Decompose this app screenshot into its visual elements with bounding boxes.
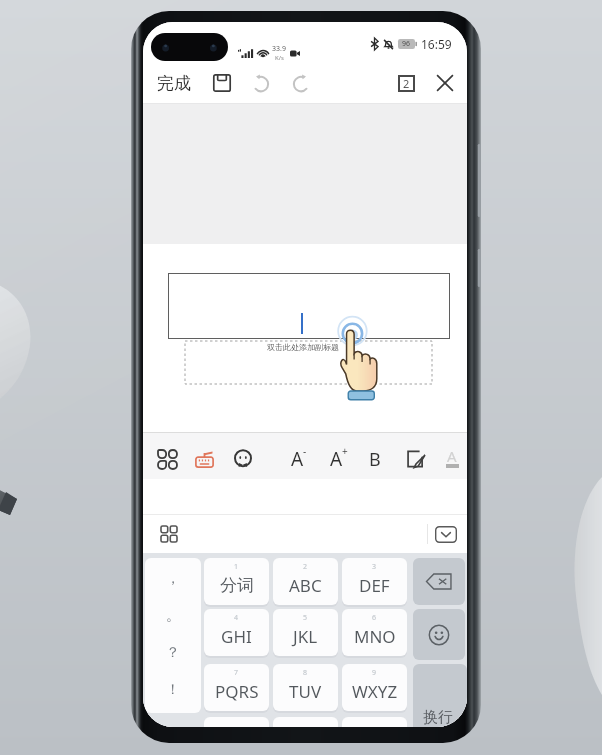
staticText: B [369, 447, 381, 472]
staticText: A [447, 446, 457, 466]
staticText: 9 [372, 668, 377, 678]
button[interactable]: Text colour [438, 445, 466, 473]
staticText: 双击此处添加副标题 [267, 342, 339, 352]
staticText: 4 [234, 613, 239, 623]
button[interactable]: Input methods [153, 518, 185, 550]
button[interactable]: 5 [273, 609, 338, 656]
staticText: - [303, 444, 307, 458]
button[interactable]: Note [400, 443, 432, 475]
staticText: 分词 [220, 575, 254, 596]
button[interactable]: Title placeholder [168, 273, 450, 339]
staticText: PQRS [215, 680, 259, 703]
staticText: ABC [289, 574, 322, 597]
button[interactable]: Backspace [413, 558, 465, 605]
button[interactable]: Save [207, 68, 237, 98]
button[interactable] [342, 717, 407, 727]
staticText: 2 [403, 76, 410, 91]
staticText: MNO [354, 625, 396, 648]
button[interactable]: 1 [204, 558, 269, 605]
staticText: A [291, 446, 304, 472]
button[interactable]: Templates [151, 443, 183, 475]
staticText: DEF [359, 574, 390, 597]
staticText: TUV [289, 680, 322, 703]
staticText: ！ [166, 681, 180, 699]
staticText: 7 [234, 668, 239, 678]
button[interactable]: Decrease font size [283, 443, 315, 475]
staticText: 1 [234, 562, 239, 572]
button[interactable]: Increase font size [323, 443, 355, 475]
staticText: JKL [293, 625, 318, 648]
staticText: 完成 [157, 73, 191, 94]
staticText: 8 [303, 668, 308, 678]
button[interactable]: 完成 [152, 70, 196, 96]
button[interactable]: Hide keyboard [430, 518, 462, 550]
button[interactable]: Close [430, 68, 460, 98]
button[interactable]: 8 [273, 664, 338, 711]
button[interactable]: Subtitle placeholder [185, 341, 432, 384]
staticText: 3 [372, 562, 377, 572]
button[interactable]: 9 [342, 664, 407, 711]
staticText: K/s [275, 54, 284, 62]
staticText: 5 [303, 613, 308, 623]
staticText: ， [166, 570, 180, 588]
button[interactable]: Undo [246, 68, 276, 98]
staticText: 。 [166, 607, 180, 625]
staticText: 换行 [423, 708, 453, 727]
button[interactable]: 4 [204, 609, 269, 656]
staticText: 96 [402, 39, 411, 49]
button[interactable]: Enter [413, 664, 467, 727]
button[interactable]: Keyboard [188, 443, 220, 475]
button[interactable]: Emoji [227, 443, 259, 475]
staticText: ？ [166, 644, 180, 662]
staticText: 33.9 [272, 44, 286, 54]
button[interactable]: Bold [361, 445, 389, 473]
button[interactable]: ， [145, 558, 201, 713]
button[interactable] [204, 717, 269, 727]
button[interactable]: 2 [273, 558, 338, 605]
staticText: 16:59 [421, 36, 452, 52]
button[interactable]: 6 [342, 609, 407, 656]
button[interactable]: 7 [204, 664, 269, 711]
staticText: 6 [372, 613, 377, 623]
button[interactable]: Slides [391, 68, 421, 98]
staticText: + [342, 444, 348, 458]
staticText: WXYZ [352, 680, 398, 703]
button[interactable]: 0 [273, 717, 338, 727]
staticText: GHI [221, 625, 252, 648]
staticText: A [330, 446, 343, 472]
button[interactable]: 3 [342, 558, 407, 605]
staticText: 2 [303, 562, 308, 572]
button[interactable]: Redo [286, 68, 316, 98]
button[interactable]: Emoji [413, 609, 465, 660]
